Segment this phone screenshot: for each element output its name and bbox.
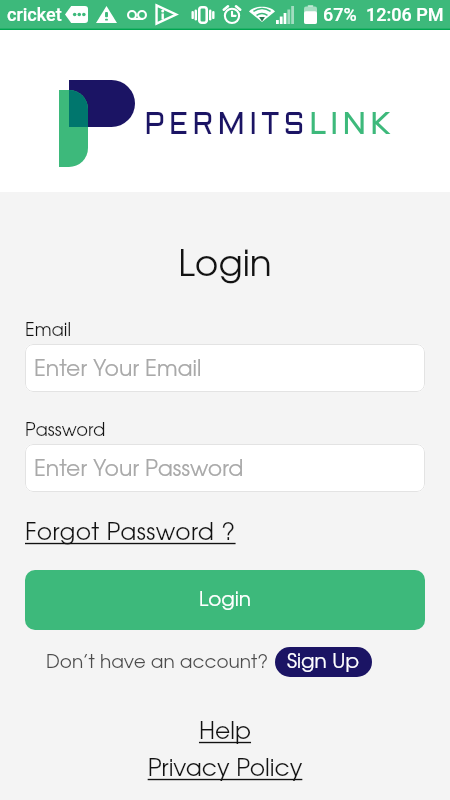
staticText: Enter Your Password xyxy=(34,460,244,480)
button[interactable]: Sign Up xyxy=(275,647,372,677)
staticText: Login xyxy=(199,591,251,610)
staticText: Don’t have an account? xyxy=(46,654,269,671)
button[interactable]: Enter Your Email xyxy=(25,344,425,392)
button[interactable]: Help xyxy=(0,722,450,744)
staticText: Enter Your Email xyxy=(34,360,202,380)
staticText: PERMITS xyxy=(144,112,309,140)
button[interactable]: Enter Your Password xyxy=(25,444,425,492)
staticText: LINK xyxy=(309,112,395,140)
button[interactable]: Privacy Policy xyxy=(0,759,450,781)
button[interactable]: Forgot Password ? xyxy=(25,523,236,545)
staticText: 67% xyxy=(323,4,357,25)
staticText: Forgot Password ? xyxy=(25,523,236,545)
staticText: 12:06 PM xyxy=(366,4,444,25)
staticText: cricket xyxy=(7,4,62,25)
staticText: Login xyxy=(0,249,450,283)
staticText: Email xyxy=(25,323,72,340)
button[interactable]: Login xyxy=(25,570,425,630)
staticText: Password xyxy=(25,423,106,440)
staticText: Sign Up xyxy=(287,653,360,672)
